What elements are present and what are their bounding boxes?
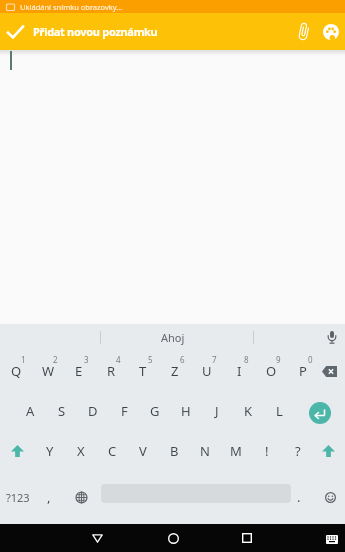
button[interactable]: T — [129, 358, 157, 384]
staticText: 5 — [148, 354, 153, 365]
staticText: Y — [46, 442, 54, 460]
button[interactable]: ! — [253, 438, 281, 464]
staticText: 7 — [212, 354, 217, 365]
button[interactable]: , — [39, 484, 59, 510]
button[interactable]: Z — [161, 358, 189, 384]
button[interactable]: M — [222, 438, 250, 464]
staticText: T — [139, 362, 147, 380]
staticText: B — [170, 442, 179, 460]
button[interactable] — [0, 13, 30, 50]
button[interactable] — [309, 402, 331, 424]
staticText: , — [47, 488, 51, 506]
staticText: ? — [295, 442, 301, 460]
staticText: P — [299, 362, 307, 380]
staticText: . — [297, 488, 301, 506]
button[interactable]: O — [257, 358, 285, 384]
staticText: 6 — [180, 354, 185, 365]
staticText: 0 — [308, 354, 313, 365]
staticText: 2 — [53, 354, 58, 365]
staticText: N — [200, 442, 210, 460]
staticText: Ahoj — [161, 330, 185, 345]
button[interactable]: P — [289, 358, 317, 384]
staticText: J — [215, 402, 219, 420]
button[interactable]: A — [16, 398, 44, 424]
button[interactable]: S — [48, 398, 76, 424]
button[interactable]: R — [97, 358, 125, 384]
staticText: ! — [265, 442, 269, 460]
button[interactable]: X — [67, 438, 95, 464]
button[interactable]: B — [160, 438, 188, 464]
staticText: 3 — [84, 354, 89, 365]
button[interactable] — [153, 524, 193, 552]
button[interactable]: ? — [284, 438, 312, 464]
button[interactable]: Q — [2, 358, 30, 384]
staticText: 1 — [21, 354, 26, 365]
button[interactable]: Y — [36, 438, 64, 464]
staticText: S — [58, 402, 66, 420]
staticText: Z — [171, 362, 179, 380]
button[interactable]: ?123 — [2, 484, 34, 510]
button[interactable] — [318, 324, 345, 351]
staticText: Přidat novou poznámku — [33, 24, 158, 39]
button[interactable] — [77, 524, 117, 552]
button[interactable]: C — [98, 438, 126, 464]
button[interactable] — [318, 484, 342, 510]
button[interactable]: N — [191, 438, 219, 464]
staticText: E — [75, 362, 83, 380]
staticText: X — [77, 442, 85, 460]
button[interactable]: H — [172, 398, 200, 424]
staticText: W — [42, 362, 55, 380]
button[interactable]: W — [34, 358, 62, 384]
staticText: ?123 — [6, 490, 30, 505]
staticText: A — [26, 402, 35, 420]
staticText: U — [202, 362, 212, 380]
staticText: K — [244, 402, 253, 420]
staticText: R — [107, 362, 116, 380]
button[interactable] — [69, 484, 93, 510]
button[interactable]: Ahoj — [161, 330, 185, 345]
staticText: F — [121, 402, 128, 420]
staticText: 8 — [244, 354, 249, 365]
staticText: 4 — [116, 354, 121, 365]
staticText: C — [108, 442, 117, 460]
button[interactable]: D — [79, 398, 107, 424]
button[interactable]: G — [141, 398, 169, 424]
button[interactable]: V — [129, 438, 157, 464]
button[interactable]: J — [203, 398, 231, 424]
staticText: O — [266, 362, 277, 380]
button[interactable] — [2, 438, 32, 464]
button[interactable]: I — [225, 358, 253, 384]
button[interactable]: F — [110, 398, 138, 424]
staticText: M — [230, 442, 242, 460]
staticText: G — [150, 402, 160, 420]
button[interactable] — [315, 358, 343, 384]
staticText: I — [237, 362, 242, 380]
staticText: D — [88, 402, 98, 420]
button[interactable] — [313, 438, 343, 464]
button[interactable]: U — [193, 358, 221, 384]
staticText: H — [181, 402, 191, 420]
button[interactable]: L — [265, 398, 293, 424]
staticText: Q — [11, 362, 22, 380]
button[interactable] — [227, 524, 267, 552]
button[interactable] — [317, 13, 345, 50]
button[interactable]: E — [65, 358, 93, 384]
staticText: L — [276, 402, 283, 420]
staticText: Ukládání snímku obrazovky... — [20, 2, 123, 12]
button[interactable] — [289, 13, 317, 50]
staticText: V — [139, 442, 147, 460]
button[interactable]: . — [291, 484, 307, 510]
staticText: 9 — [276, 354, 281, 365]
button[interactable] — [319, 526, 345, 552]
button[interactable]: K — [234, 398, 262, 424]
